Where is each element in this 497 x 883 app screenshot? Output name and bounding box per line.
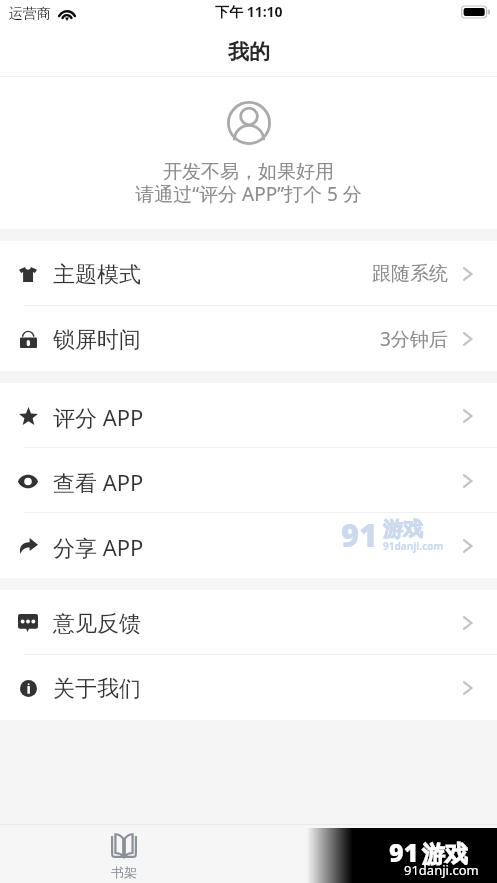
staticText: 锁屏时间 xyxy=(53,326,141,354)
staticText: 游戏 xyxy=(383,517,423,542)
staticText: 书架 xyxy=(111,864,137,880)
button[interactable]: 意见反馈 xyxy=(0,590,497,655)
staticText: 91 xyxy=(341,514,378,556)
staticText: 91 xyxy=(389,835,419,869)
button[interactable]: 我的 xyxy=(248,825,497,883)
button[interactable]: 查看 APP xyxy=(0,448,497,513)
button[interactable]: 评分 APP xyxy=(0,383,497,448)
staticText: 关于我们 xyxy=(53,675,141,703)
staticText: 开发不易，如果好用 xyxy=(163,160,334,184)
staticText: 我的 xyxy=(228,39,270,65)
staticText: 意见反馈 xyxy=(53,610,141,638)
staticText: 91danji.com xyxy=(383,539,444,553)
staticText: 评分 APP xyxy=(53,402,144,432)
staticText: 91danji.com xyxy=(404,861,479,879)
button[interactable]: 主题模式 xyxy=(0,241,497,306)
button[interactable]: 锁屏时间 xyxy=(0,306,497,371)
staticText: 请通过“评分 APP”打个 5 分 xyxy=(135,181,362,207)
staticText: 分享 APP xyxy=(53,532,144,562)
staticText: 3分钟后 xyxy=(380,326,448,352)
staticText: 运营商 xyxy=(9,5,51,23)
staticText: 查看 APP xyxy=(53,467,144,497)
button[interactable]: 关于我们 xyxy=(0,655,497,720)
button[interactable]: 分享 APP xyxy=(0,513,497,578)
staticText: 游戏 xyxy=(422,840,468,869)
button[interactable]: 书架 xyxy=(0,825,248,883)
staticText: 主题模式 xyxy=(53,261,141,289)
staticText: 跟随系统 xyxy=(372,262,448,286)
staticText: 下午 11:10 xyxy=(215,2,283,21)
